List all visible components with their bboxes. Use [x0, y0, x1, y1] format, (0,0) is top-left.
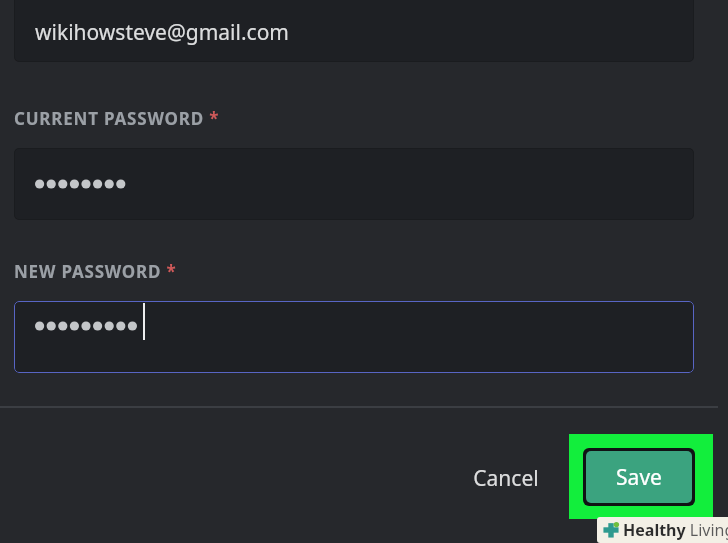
- button[interactable]: Cancel: [455, 455, 557, 501]
- staticText: Healthy Living: [623, 519, 728, 541]
- staticText: CURRENT PASSWORD *: [14, 107, 220, 130]
- staticText: NEW PASSWORD *: [14, 260, 177, 283]
- button[interactable]: Save: [586, 451, 692, 503]
- button[interactable]: [14, 148, 694, 220]
- staticText: Save: [616, 463, 662, 492]
- staticText: Cancel: [473, 464, 539, 493]
- button[interactable]: wikihowsteve@gmail.com: [14, 0, 694, 62]
- button[interactable]: [14, 301, 694, 373]
- staticText: wikihowsteve@gmail.com: [35, 18, 289, 47]
